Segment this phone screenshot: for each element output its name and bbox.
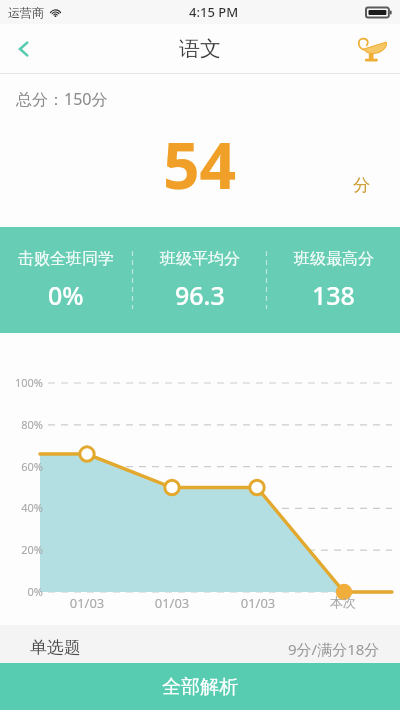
- staticText: 单选题: [30, 637, 81, 658]
- staticText: 01/03: [57, 594, 117, 612]
- button[interactable]: 班级平均分: [133, 249, 266, 312]
- staticText: 60%: [0, 459, 43, 474]
- button[interactable]: 班级最高分: [267, 249, 400, 312]
- staticText: 击败全班同学: [18, 249, 114, 269]
- staticText: 0%: [0, 584, 43, 599]
- staticText: 138: [312, 278, 355, 312]
- staticText: 96.3: [175, 278, 225, 312]
- staticText: 9分/满分18分: [288, 639, 380, 659]
- staticText: 班级平均分: [160, 249, 240, 269]
- staticText: 4:15 PM: [189, 3, 239, 21]
- staticText: 01/03: [228, 594, 288, 612]
- staticText: 分: [353, 175, 370, 196]
- staticText: 100%: [0, 375, 43, 390]
- staticText: 全部解析: [162, 675, 238, 699]
- staticText: 01/03: [142, 594, 202, 612]
- staticText: 54: [163, 121, 237, 208]
- staticText: 语文: [179, 36, 221, 62]
- staticText: 40%: [0, 500, 43, 515]
- staticText: 本次: [313, 594, 373, 610]
- button[interactable]: Magic lamp: [348, 26, 394, 72]
- button[interactable]: Back: [0, 25, 48, 73]
- staticText: 80%: [0, 417, 43, 432]
- button[interactable]: 击败全班同学: [0, 249, 132, 312]
- staticText: 0%: [48, 278, 84, 312]
- staticText: 总分：150分: [16, 88, 108, 110]
- staticText: 班级最高分: [294, 249, 374, 269]
- staticText: 运营商: [8, 5, 44, 20]
- button[interactable]: 单选题: [0, 625, 400, 710]
- button[interactable]: 全部解析: [0, 663, 400, 710]
- staticText: 20%: [0, 542, 43, 557]
